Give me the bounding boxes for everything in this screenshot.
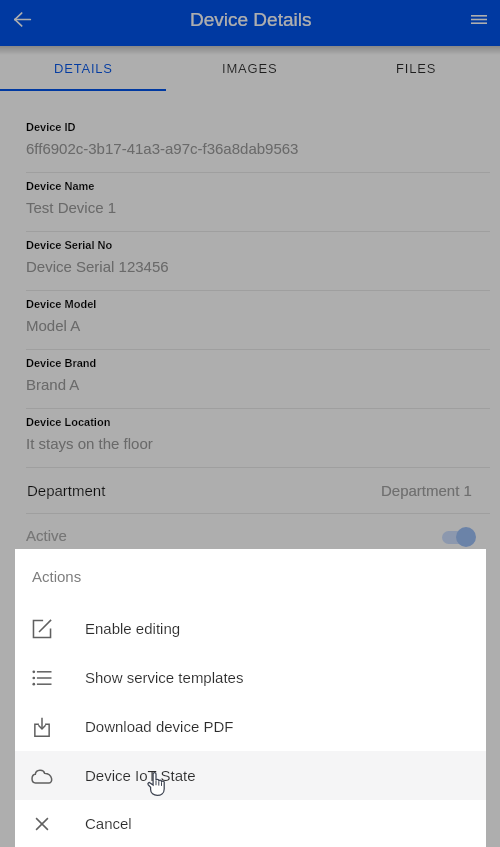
staticText: Device Serial 123456 [26, 258, 169, 275]
staticText: Department [27, 482, 106, 499]
staticText: Device Details [190, 9, 312, 30]
staticText: Device IoT State [85, 767, 196, 784]
button[interactable]: Show service templates [15, 653, 486, 702]
button[interactable]: DETAILS [0, 46, 166, 91]
button[interactable]: Department [0, 468, 500, 513]
staticText: Show service templates [85, 669, 244, 686]
staticText: Test Device 1 [26, 199, 117, 216]
staticText: Actions [32, 568, 82, 585]
button[interactable]: Active toggle [442, 527, 476, 547]
staticText: FILES [396, 61, 437, 76]
staticText: IMAGES [222, 61, 278, 76]
button[interactable]: Download device PDF [15, 702, 486, 751]
staticText: 6ff6902c-3b17-41a3-a97c-f36a8dab9563 [26, 140, 299, 157]
staticText: Device Location [26, 416, 111, 428]
button[interactable]: Active [0, 514, 500, 560]
button[interactable]: Back [2, 0, 42, 38]
staticText: Download device PDF [85, 718, 234, 735]
staticText: Enable editing [85, 620, 181, 637]
button[interactable]: Menu [460, 0, 498, 38]
button[interactable]: FILES [333, 46, 500, 91]
staticText: Device Brand [26, 357, 97, 369]
staticText: DETAILS [54, 61, 113, 76]
staticText: It stays on the floor [26, 435, 153, 452]
staticText: Brand A [26, 376, 80, 393]
staticText: Device ID [26, 121, 76, 133]
button[interactable]: Cancel [15, 800, 486, 847]
staticText: Active [26, 527, 67, 544]
staticText: Cancel [85, 815, 132, 832]
staticText: Model A [26, 317, 81, 334]
staticText: Department 1 [381, 482, 472, 499]
staticText: Device Model [26, 298, 97, 310]
staticText: Device Serial No [26, 239, 113, 251]
staticText: Device Name [26, 180, 95, 192]
button[interactable]: Device IoT State [15, 751, 486, 800]
button[interactable]: IMAGES [166, 46, 333, 91]
button[interactable]: Enable editing [15, 604, 486, 653]
